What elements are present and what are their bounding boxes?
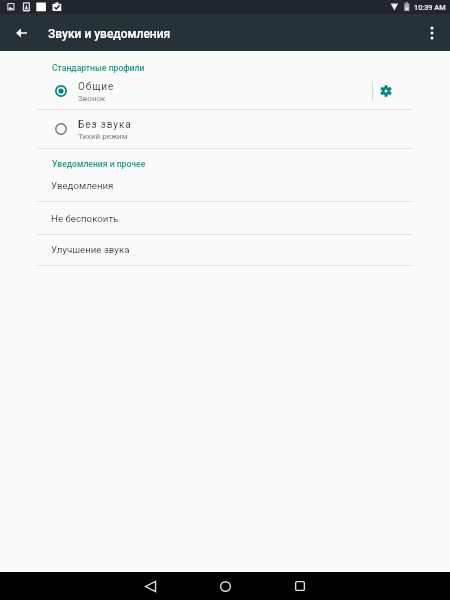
button[interactable]: Уведомления <box>51 169 450 202</box>
button[interactable]: More options <box>420 14 444 51</box>
staticText: Уведомления и прочее <box>52 159 146 169</box>
button[interactable]: Без звука <box>0 112 450 146</box>
button[interactable]: Home <box>209 572 241 600</box>
staticText: 10:39 AM <box>414 3 446 12</box>
staticText: Звуки и уведомления <box>48 27 171 41</box>
button[interactable]: Общие <box>0 74 450 108</box>
button[interactable]: Navigate up <box>9 14 450 51</box>
button[interactable]: Back <box>134 572 166 600</box>
button[interactable]: Recent apps <box>284 572 316 600</box>
staticText: Без звука <box>78 119 132 131</box>
staticText: Не беспокоить <box>51 213 119 224</box>
staticText: Тихий режим <box>78 132 128 141</box>
staticText: Стандартные профили <box>52 63 145 73</box>
staticText: Улучшение звука <box>51 244 130 255</box>
button[interactable]: Улучшение звука <box>51 234 450 265</box>
button[interactable]: Ringtone settings <box>374 79 398 103</box>
staticText: Общие <box>78 81 115 93</box>
button[interactable]: Не беспокоить <box>51 202 450 235</box>
staticText: Звонок <box>78 94 106 103</box>
staticText: Уведомления <box>51 180 114 191</box>
